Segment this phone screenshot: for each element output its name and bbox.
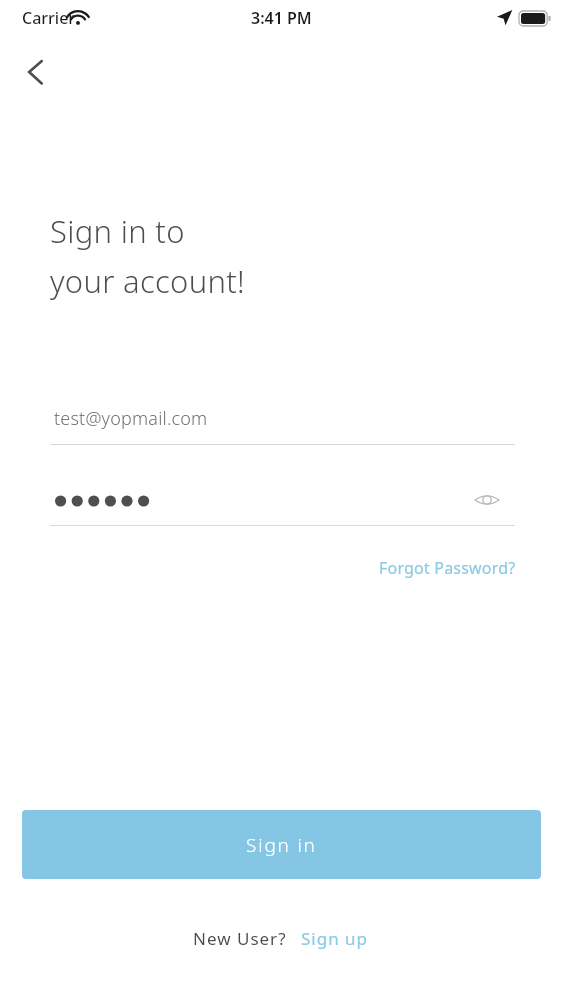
button[interactable]: Back <box>14 50 58 94</box>
staticText: Sign in <box>246 832 317 858</box>
button[interactable]: Forgot Password? <box>340 552 516 584</box>
staticText: Carrier <box>22 7 76 29</box>
button[interactable]: test@yopmail.com <box>50 400 515 445</box>
button[interactable] <box>50 480 515 522</box>
button[interactable]: Sign in <box>22 810 541 879</box>
staticText: your account! <box>50 260 245 302</box>
staticText: Forgot Password? <box>379 557 516 579</box>
staticText: New User? <box>193 927 287 950</box>
staticText: test@yopmail.com <box>54 406 208 431</box>
button[interactable]: Sign up <box>299 924 371 953</box>
button[interactable]: Show password <box>468 481 506 519</box>
staticText: 3:41 PM <box>251 7 312 29</box>
staticText: Sign up <box>301 927 369 950</box>
staticText: Sign in to <box>50 210 185 252</box>
